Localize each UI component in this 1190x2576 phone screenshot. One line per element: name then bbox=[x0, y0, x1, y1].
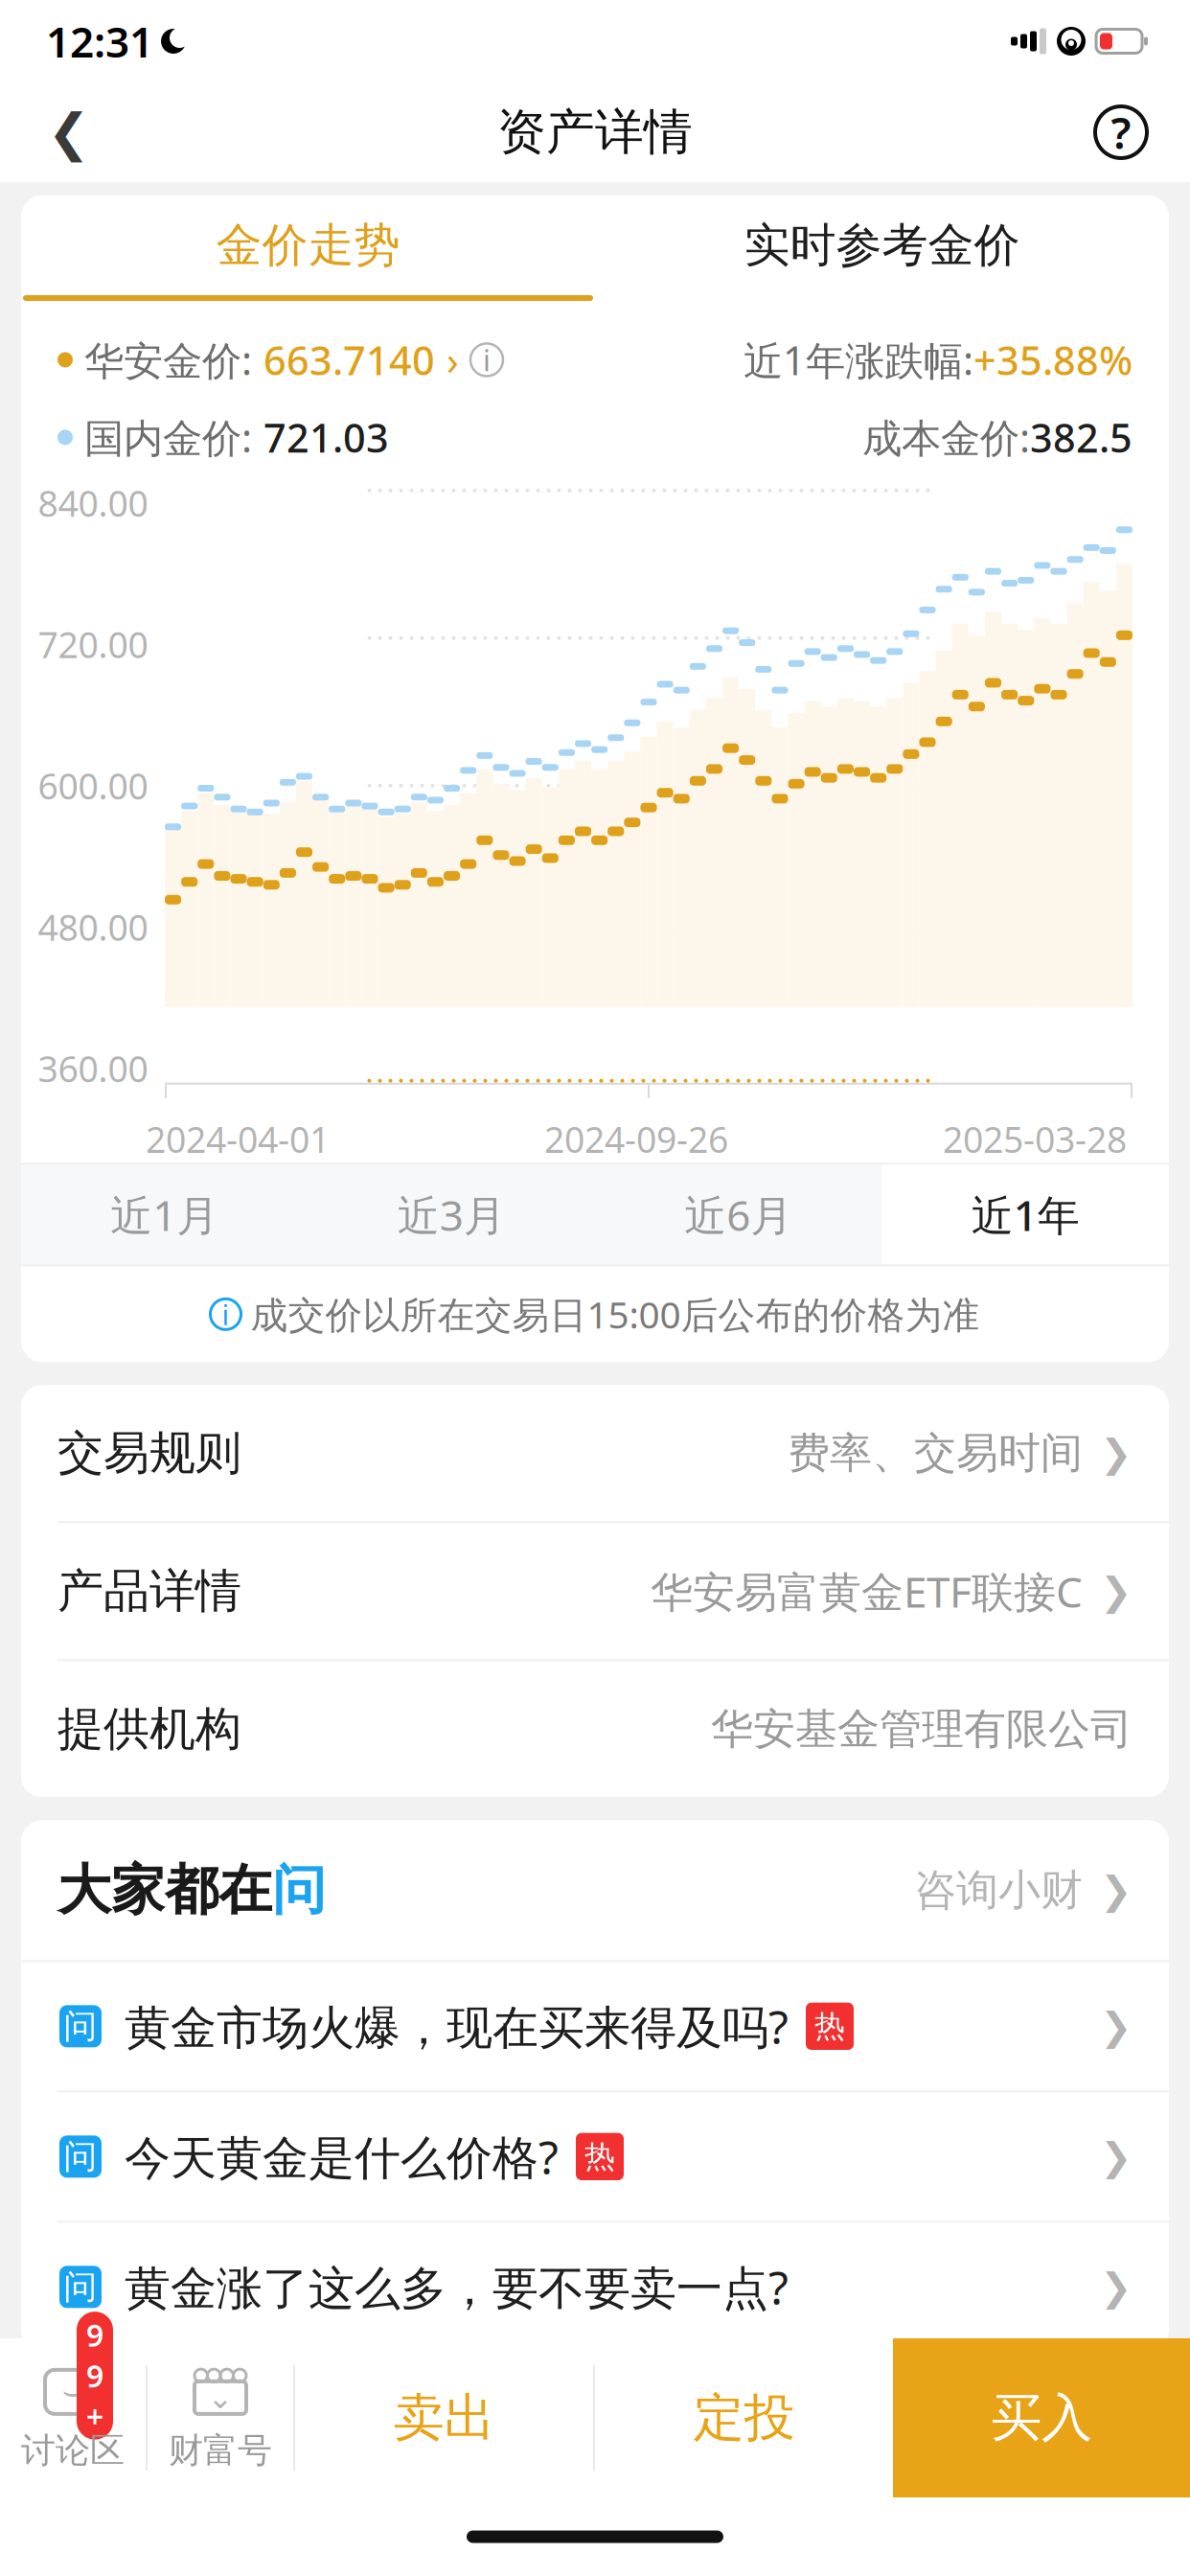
staticText: 卖出 bbox=[393, 2386, 495, 2449]
staticText: 交易规则 bbox=[57, 1425, 241, 1481]
button[interactable]: 问 bbox=[21, 2223, 1169, 2351]
button[interactable]: 实时参考金价 bbox=[595, 195, 1169, 295]
staticText: 资产详情 bbox=[497, 102, 693, 162]
staticText: 今天黄金是什么价格? bbox=[125, 2126, 559, 2187]
staticText: 热 bbox=[584, 2138, 615, 2175]
button[interactable]: ⌣ bbox=[0, 2338, 146, 2497]
staticText: 问 bbox=[64, 2136, 97, 2177]
staticText: › bbox=[446, 333, 459, 386]
staticText: 2024-09-26 bbox=[544, 1115, 728, 1163]
staticText: 2025-03-28 bbox=[943, 1115, 1127, 1163]
staticText: ❯ bbox=[1100, 2005, 1133, 2048]
staticText: 663.7140 bbox=[263, 333, 435, 386]
staticText: 国内金价: bbox=[84, 411, 252, 464]
staticText: 99+ bbox=[86, 2314, 103, 2437]
staticText: 721.03 bbox=[263, 411, 389, 464]
staticText: 黄金市场火爆，现在买来得及吗? bbox=[125, 1996, 789, 2057]
staticText: 12:31 bbox=[46, 13, 153, 69]
button[interactable]: 帮助 bbox=[1075, 86, 1167, 178]
staticText: 大家都在 bbox=[57, 1857, 272, 1923]
staticText: 华安易富黄金ETF联接C bbox=[651, 1563, 1083, 1619]
staticText: ❯ bbox=[1100, 1569, 1133, 1613]
button[interactable]: 问 bbox=[21, 1962, 1169, 2092]
staticText: i bbox=[483, 340, 491, 379]
staticText: 费率、交易时间 bbox=[788, 1427, 1083, 1479]
staticText: ⌣ bbox=[62, 2376, 84, 2408]
staticText: 720.00 bbox=[38, 621, 148, 668]
button[interactable]: ⌄ bbox=[148, 2338, 293, 2497]
staticText: ❯ bbox=[1100, 2135, 1133, 2178]
staticText: 产品详情 bbox=[57, 1563, 241, 1619]
staticText: 华安金价: bbox=[84, 333, 252, 386]
button[interactable]: 提供机构 bbox=[21, 1661, 1169, 1797]
staticText: 提供机构 bbox=[57, 1701, 241, 1757]
button[interactable]: 华安金价: bbox=[57, 333, 503, 386]
staticText: 2024-04-01 bbox=[146, 1115, 330, 1163]
button[interactable]: 定投 bbox=[595, 2338, 893, 2497]
button[interactable]: 返回 bbox=[23, 86, 115, 178]
staticText: 近3月 bbox=[397, 1187, 506, 1242]
staticText: 黄金涨了这么多，要不要卖一点? bbox=[125, 2256, 789, 2317]
button[interactable]: 买入 bbox=[893, 2338, 1190, 2497]
staticText: 近1月 bbox=[110, 1187, 219, 1242]
staticText: 问 bbox=[64, 2267, 97, 2307]
staticText: 问 bbox=[272, 1857, 326, 1923]
staticText: 金价走势 bbox=[216, 217, 400, 274]
staticText: ❯ bbox=[1100, 1868, 1133, 1912]
button[interactable]: 近3月 bbox=[308, 1163, 595, 1266]
staticText: 840.00 bbox=[38, 479, 148, 527]
staticText: 定投 bbox=[693, 2386, 795, 2449]
staticText: 成本金价: bbox=[862, 411, 1030, 464]
staticText: 600.00 bbox=[38, 762, 148, 809]
staticText: ⌄ bbox=[207, 2380, 233, 2415]
staticText: ❮ bbox=[47, 103, 91, 161]
staticText: i bbox=[222, 1296, 229, 1333]
staticText: 近1年 bbox=[971, 1187, 1080, 1242]
staticText: ❯ bbox=[1100, 2265, 1133, 2309]
button[interactable]: 近1年 bbox=[882, 1163, 1169, 1266]
staticText: 问 bbox=[64, 2006, 97, 2047]
staticText: 成交价以所在交易日15:00后公布的价格为准 bbox=[251, 1290, 980, 1339]
staticText: 咨询小财 bbox=[914, 1864, 1083, 1916]
staticText: 财富号 bbox=[169, 2429, 272, 2472]
staticText: 360.00 bbox=[38, 1045, 148, 1092]
button[interactable]: 金价走势 bbox=[21, 195, 595, 295]
staticText: 近6月 bbox=[684, 1187, 793, 1242]
staticText: ❯ bbox=[1100, 1431, 1133, 1475]
staticText: 买入 bbox=[991, 2386, 1092, 2449]
staticText: 480.00 bbox=[38, 903, 148, 951]
button[interactable]: 卖出 bbox=[295, 2338, 593, 2497]
staticText: ? bbox=[1111, 103, 1131, 161]
button[interactable]: 近1月 bbox=[21, 1163, 308, 1266]
staticText: 热 bbox=[814, 2007, 845, 2045]
staticText: 382.5 bbox=[1030, 411, 1133, 464]
button[interactable]: 大家都在 bbox=[21, 1820, 1169, 1962]
staticText: 近1年涨跌幅: bbox=[744, 333, 973, 386]
staticText: +35.88% bbox=[973, 333, 1133, 386]
button[interactable]: 问 bbox=[21, 2092, 1169, 2223]
staticText: 华安基金管理有限公司 bbox=[711, 1703, 1133, 1755]
button[interactable]: 近6月 bbox=[595, 1163, 882, 1266]
button[interactable]: 产品详情 bbox=[21, 1523, 1169, 1661]
staticText: 实时参考金价 bbox=[744, 217, 1020, 274]
staticText: 讨论区 bbox=[21, 2429, 125, 2472]
button[interactable]: 交易规则 bbox=[21, 1385, 1169, 1523]
